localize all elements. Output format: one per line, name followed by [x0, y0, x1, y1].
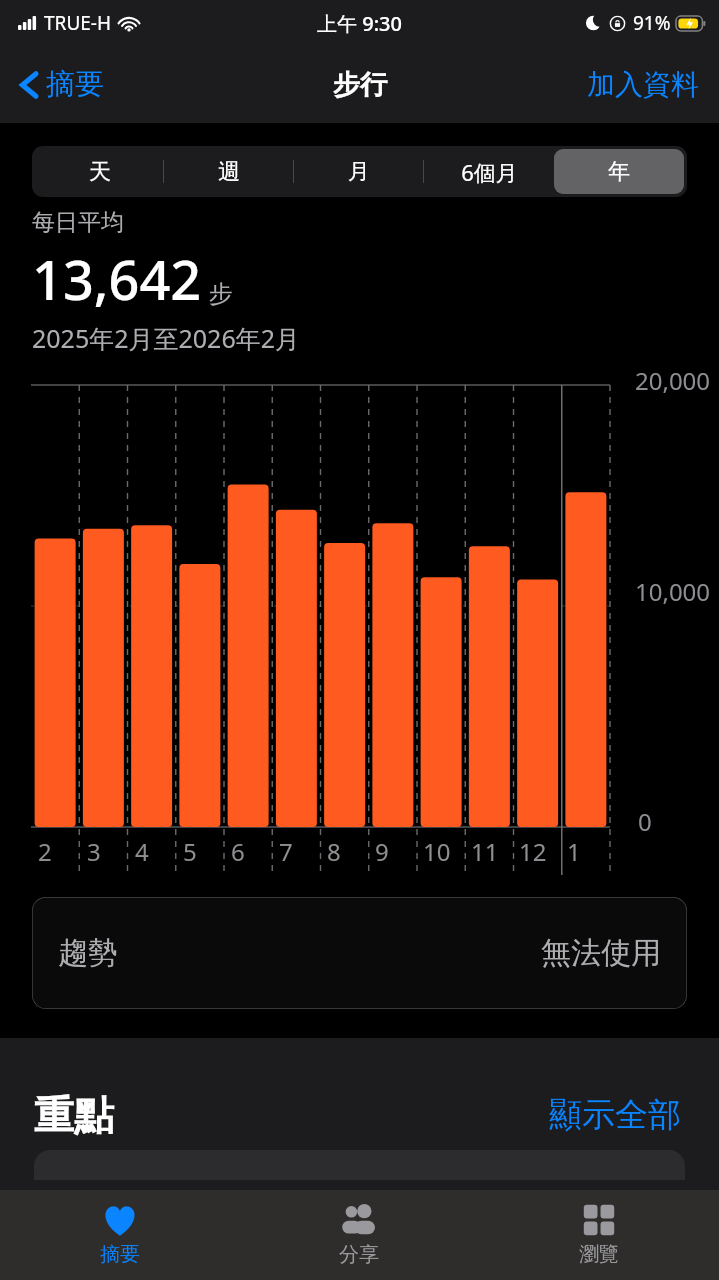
staticText: 月: [348, 158, 370, 186]
staticText: 摘要: [46, 66, 104, 103]
staticText: 0: [638, 805, 652, 838]
staticText: 趨勢: [58, 934, 118, 972]
staticText: 無法使用: [541, 934, 661, 972]
staticText: 8: [327, 835, 341, 868]
button[interactable]: 顯示全部: [545, 1090, 685, 1140]
button[interactable]: 趨勢: [32, 897, 687, 1009]
staticText: 2: [38, 835, 52, 868]
staticText: 3: [87, 835, 101, 868]
staticText: 13,642: [32, 242, 202, 316]
staticText: 摘要: [100, 1242, 140, 1267]
staticText: 每日平均: [32, 208, 124, 237]
staticText: 5: [183, 835, 197, 868]
staticText: 4: [135, 835, 149, 868]
staticText: 1: [567, 835, 581, 868]
button[interactable]: 天: [35, 149, 164, 194]
staticText: 10,000: [635, 575, 711, 608]
button[interactable]: 摘要: [0, 1190, 239, 1280]
staticText: 重點: [34, 1090, 114, 1140]
staticText: 2025年2月至2026年2月: [32, 321, 301, 355]
button[interactable]: 週: [164, 149, 294, 194]
button[interactable]: 6個月: [424, 149, 554, 194]
button[interactable]: 摘要: [12, 60, 110, 109]
staticText: 週: [218, 158, 240, 186]
staticText: 顯示全部: [549, 1094, 681, 1136]
button[interactable]: 年: [554, 149, 684, 194]
staticText: 步行: [333, 68, 387, 102]
staticText: 12: [519, 835, 547, 868]
staticText: 天: [89, 158, 111, 186]
staticText: 6個月: [461, 157, 518, 187]
button[interactable]: 分享: [239, 1190, 479, 1280]
button[interactable]: 瀏覽: [479, 1190, 719, 1280]
staticText: 7: [279, 835, 293, 868]
staticText: 加入資料: [587, 67, 699, 102]
staticText: 步: [209, 279, 233, 309]
button[interactable]: 加入資料: [581, 61, 705, 108]
staticText: 10: [423, 835, 451, 868]
staticText: 年: [608, 158, 630, 186]
staticText: 20,000: [635, 364, 711, 397]
button[interactable]: 月: [294, 149, 424, 194]
staticText: 11: [471, 835, 499, 868]
staticText: 9: [375, 835, 389, 868]
staticText: 瀏覽: [579, 1242, 619, 1267]
staticText: 91%: [633, 10, 671, 36]
staticText: 6: [231, 835, 245, 868]
staticText: TRUE-H: [44, 10, 112, 36]
staticText: 上午 9:30: [317, 10, 402, 37]
staticText: 分享: [339, 1242, 379, 1267]
